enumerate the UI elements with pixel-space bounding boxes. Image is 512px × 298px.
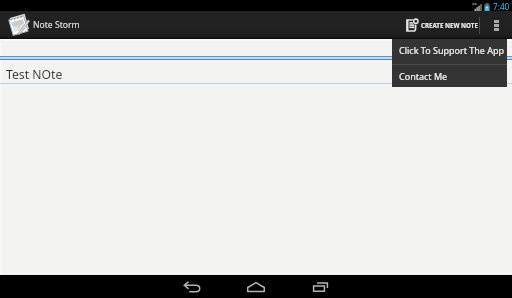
staticText: Contact Me [399, 70, 448, 82]
button[interactable]: More options [480, 11, 512, 39]
staticText: 7:40 [493, 1, 510, 12]
button[interactable]: Contact Me [392, 65, 507, 87]
staticText: Test NOte [6, 66, 63, 83]
button[interactable]: Back [182, 275, 202, 298]
staticText: Click To Support The App [399, 44, 505, 56]
button[interactable]: Recent apps [310, 275, 330, 298]
button[interactable]: Click To Support The App [392, 39, 507, 64]
button[interactable]: CREATE NEW NOTE [400, 11, 479, 39]
button[interactable]: Note Storm [0, 11, 88, 39]
button[interactable]: Home [246, 275, 266, 298]
staticText: Note Storm [33, 19, 80, 31]
staticText: CREATE NEW NOTE [421, 21, 478, 29]
button[interactable]: Test NOte [0, 60, 512, 83]
